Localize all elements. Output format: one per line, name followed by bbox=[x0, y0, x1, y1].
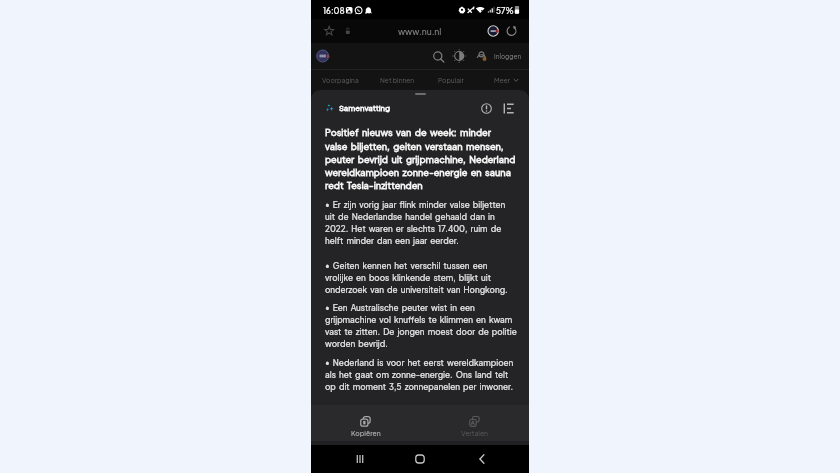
button[interactable]: Home bbox=[412, 445, 428, 473]
staticText: Kopiëren bbox=[351, 429, 381, 438]
staticText: Vertalen bbox=[461, 429, 489, 438]
staticText: 57% bbox=[496, 5, 514, 15]
staticText: • Nederland is voor het eerst wereldkamp… bbox=[325, 357, 514, 391]
staticText: www.nu.nl bbox=[398, 26, 442, 37]
button[interactable]: Back bbox=[474, 445, 490, 473]
button[interactable]: Voorpagina bbox=[322, 70, 359, 90]
button[interactable]: Net binnen bbox=[380, 70, 415, 90]
staticText: Inloggen bbox=[494, 52, 522, 60]
staticText: • Geiten kennen het verschil tussen een … bbox=[325, 260, 508, 294]
button[interactable]: Recent apps bbox=[352, 445, 368, 473]
staticText: Net binnen bbox=[380, 76, 415, 84]
staticText: • Een Australische peuter wist in een gr… bbox=[325, 302, 517, 348]
staticText: Populair bbox=[438, 76, 464, 84]
button[interactable]: Populair bbox=[438, 70, 464, 90]
staticText: 16:08 bbox=[323, 5, 345, 15]
staticText: Positief nieuws van de week: minder vals… bbox=[325, 127, 516, 191]
staticText: Samenvatting bbox=[339, 103, 391, 113]
button[interactable]: Summary length bbox=[501, 101, 515, 115]
button[interactable]: Info bbox=[479, 101, 493, 115]
staticText: Meer bbox=[494, 76, 511, 84]
staticText: Voorpagina bbox=[322, 76, 359, 84]
button[interactable]: Meer bbox=[494, 70, 519, 90]
button[interactable]: Kopiëren bbox=[311, 416, 420, 441]
staticText: • Er zijn vorig jaar flink minder valse … bbox=[325, 199, 506, 245]
button[interactable]: Vertalen bbox=[420, 416, 529, 441]
